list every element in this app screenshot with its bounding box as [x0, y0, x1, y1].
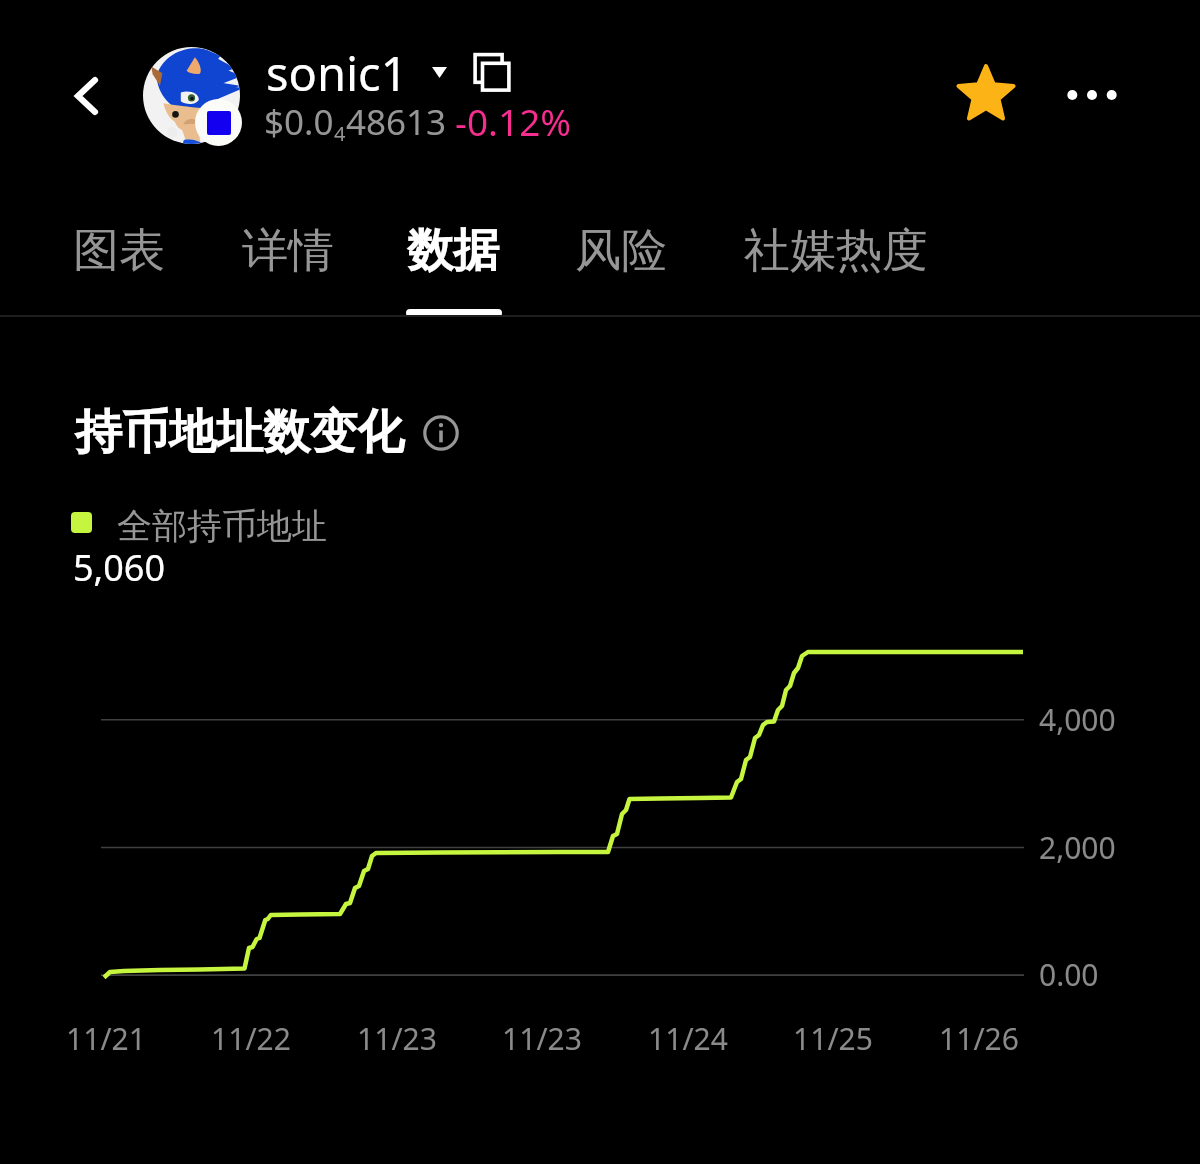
button[interactable]: Switch token	[417, 50, 462, 95]
staticText: 图表	[73, 222, 165, 280]
staticText: 48613	[346, 98, 447, 146]
staticText: 11/23	[492, 1018, 592, 1059]
button[interactable]: Copy address	[465, 45, 517, 97]
staticText: -0.12%	[455, 96, 572, 146]
staticText: 11/22	[201, 1018, 301, 1059]
staticText: 2,000	[1039, 827, 1116, 868]
button[interactable]: More options	[1058, 61, 1126, 129]
button[interactable]: 社媒热度	[720, 190, 952, 318]
staticText: 全部持币地址	[117, 504, 327, 548]
staticText: 5,060	[73, 543, 166, 592]
staticText: 11/25	[783, 1018, 883, 1059]
staticText: 11/26	[929, 1018, 1029, 1059]
staticText: 0.00	[1039, 954, 1099, 995]
button[interactable]: Favorite	[952, 60, 1020, 128]
staticText: sonic1	[266, 41, 408, 105]
button[interactable]: 数据	[386, 190, 520, 318]
staticText: 11/21	[56, 1018, 156, 1059]
staticText: $0.0	[264, 98, 334, 146]
button[interactable]: Info	[421, 413, 461, 453]
button[interactable]: 风险	[552, 190, 690, 318]
staticText: 4,000	[1039, 699, 1116, 740]
button[interactable]: Back	[56, 66, 116, 126]
button[interactable]: 详情	[222, 190, 354, 318]
staticText: 11/23	[347, 1018, 447, 1059]
button[interactable]: 图表	[53, 190, 185, 318]
staticText: 社媒热度	[744, 222, 928, 280]
staticText: 11/24	[638, 1018, 738, 1059]
staticText: 4	[334, 120, 346, 147]
staticText: 详情	[242, 222, 334, 280]
staticText: 风险	[575, 222, 667, 280]
staticText: 数据	[407, 222, 499, 280]
staticText: 持币地址数变化	[75, 403, 404, 462]
